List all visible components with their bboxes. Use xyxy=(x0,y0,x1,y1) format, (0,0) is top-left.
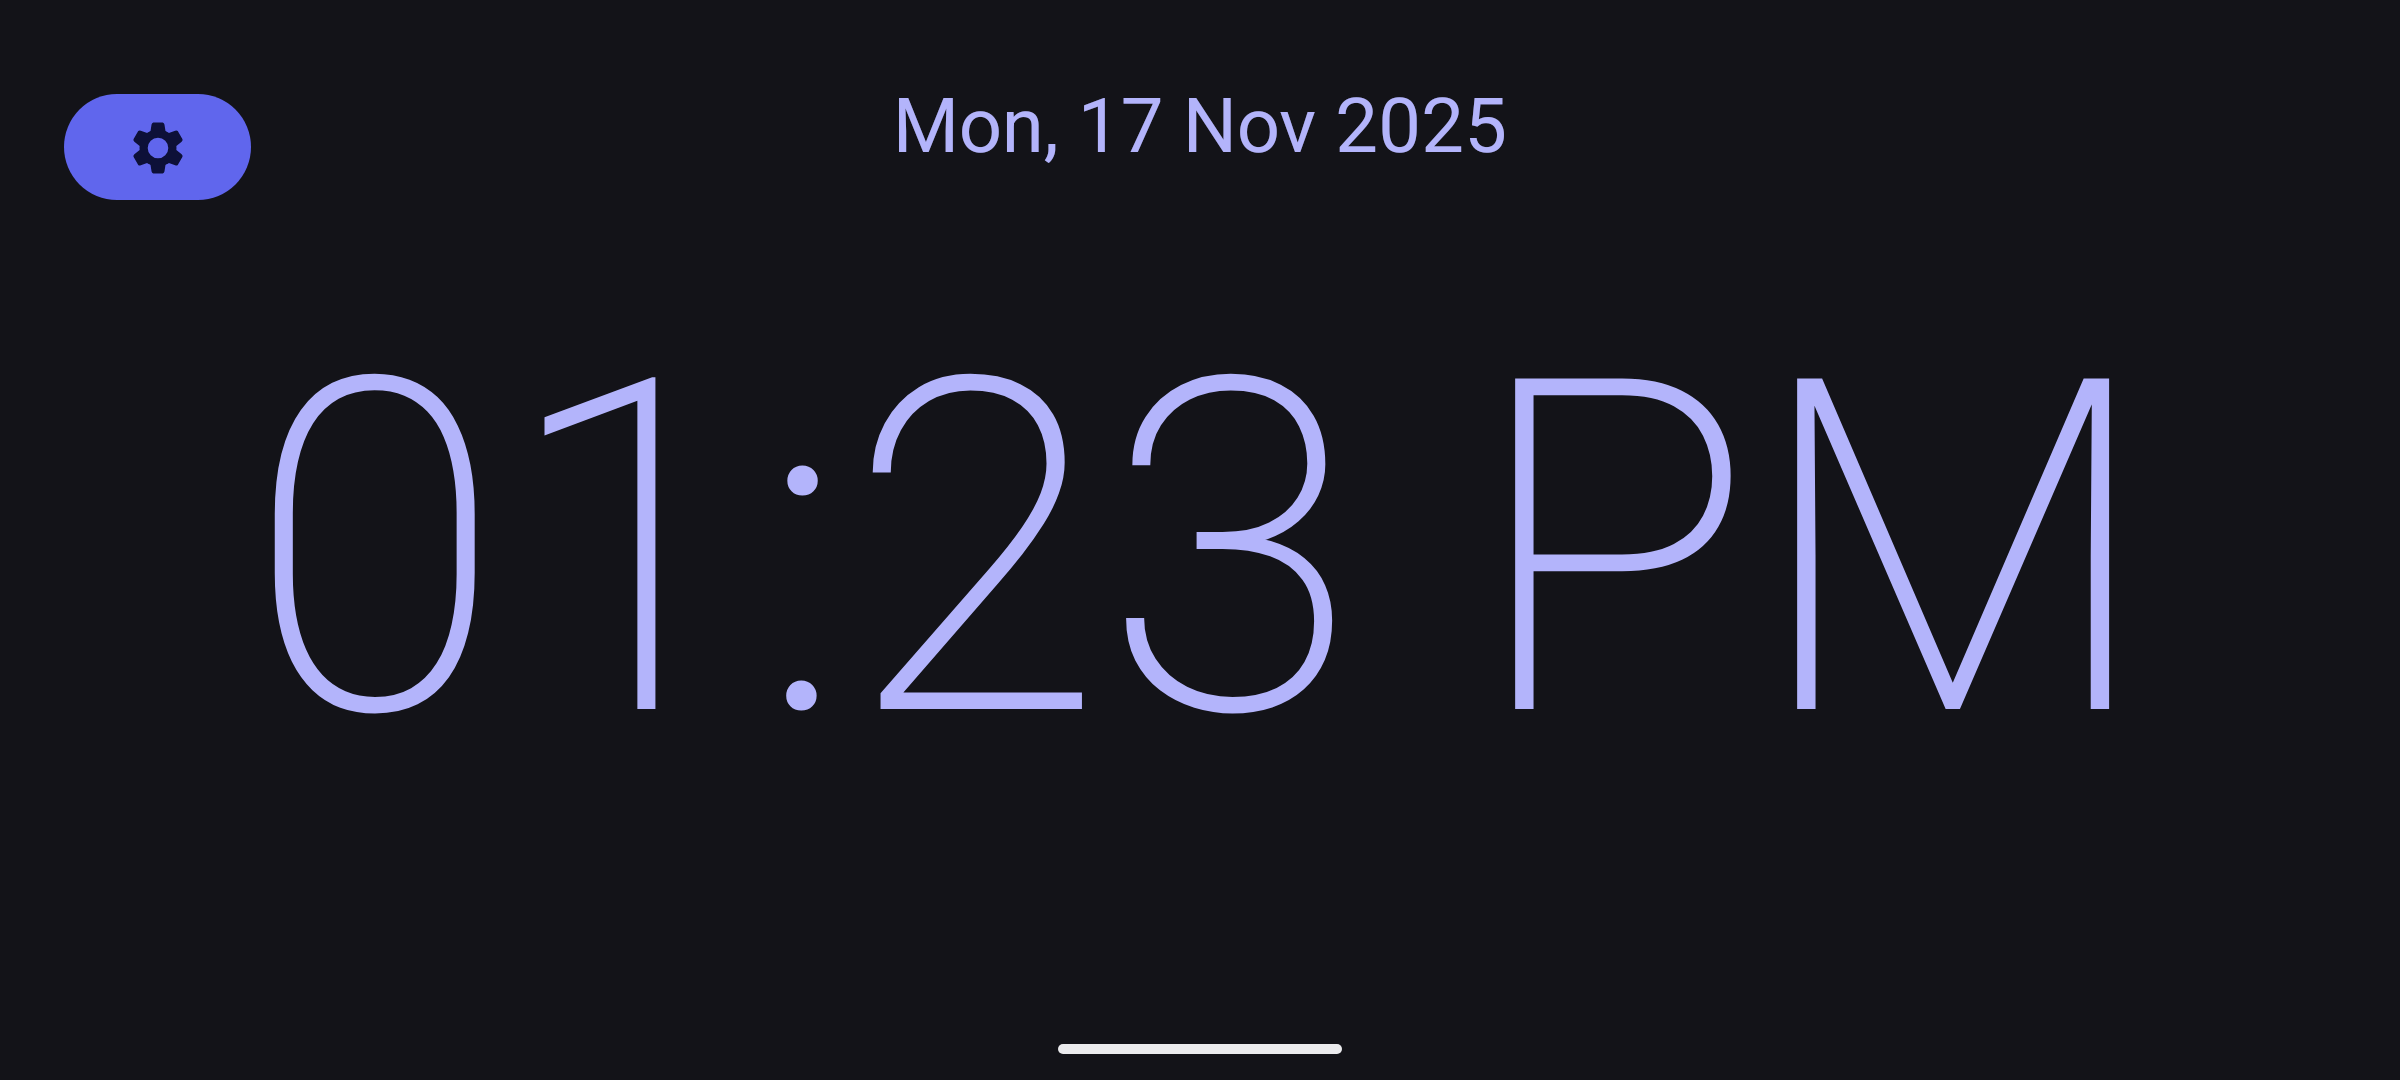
button[interactable]: Settings xyxy=(64,94,251,200)
